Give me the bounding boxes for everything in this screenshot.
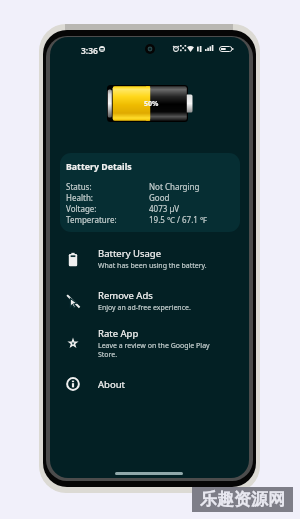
staticText: 4073 µV [149,203,180,214]
staticText: Voltage: [66,203,149,214]
staticText: Rate App [98,327,139,340]
staticText: 乐趣资源网 [200,489,285,510]
staticText: Enjoy an ad-free experience. [98,303,191,313]
button[interactable]: Battery Usage [50,238,249,280]
staticText: About [98,378,125,391]
staticText: Status: [66,181,149,192]
staticText: What has been using the battery. [98,261,207,271]
staticText: Battery Usage [98,247,161,260]
staticText: Not Charging [149,181,200,192]
staticText: Good [149,192,170,203]
staticText: Battery Details [66,161,132,173]
staticText: 19.5 ℃ / 67.1 ℉ [149,214,207,225]
staticText: 3:36 [81,45,98,57]
staticText: Leave a review on the Google Play Store. [98,341,222,359]
button[interactable]: Rate App [50,322,249,364]
staticText: 50% [144,99,159,109]
staticText: Remove Ads [98,289,153,302]
button[interactable]: About [50,363,249,405]
button[interactable]: Remove Ads [50,280,249,322]
staticText: Temperature: [66,214,149,225]
staticText: Health: [66,192,149,203]
